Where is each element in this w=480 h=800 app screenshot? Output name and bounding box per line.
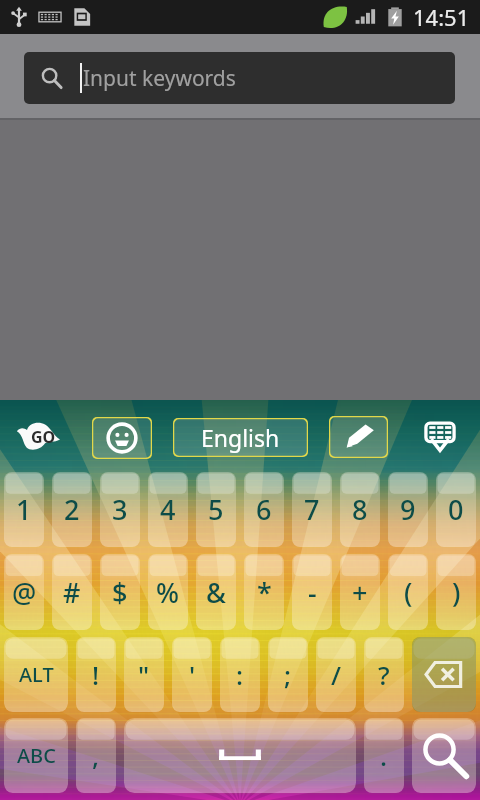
button[interactable]: ? [364,637,404,712]
staticText: : [236,657,244,692]
button[interactable]: + [340,554,380,630]
staticText: ; [284,657,292,692]
button[interactable]: 6 [244,472,284,547]
staticText: + [352,574,368,611]
staticText: 8 [352,491,368,528]
button[interactable]: , [76,718,116,793]
button[interactable]: ! [76,637,116,712]
button[interactable]: GO Keyboard menu [16,421,60,451]
staticText: ABC [17,742,56,769]
button[interactable]: : [220,637,260,712]
staticText: 3 [112,491,128,528]
button[interactable]: 9 [388,472,428,547]
button[interactable]: - [292,554,332,630]
button[interactable]: ( [388,554,428,630]
staticText: @ [12,574,37,611]
staticText: 2 [64,491,80,528]
button[interactable]: 0 [436,472,476,547]
button[interactable]: @ [4,554,44,630]
staticText: ? [378,657,390,692]
button[interactable]: $ [100,554,140,630]
staticText: 1 [16,491,32,528]
button[interactable]: . [364,718,404,793]
button[interactable]: Search [412,718,476,793]
staticText: 4 [160,491,176,528]
button[interactable]: % [148,554,188,630]
button[interactable]: 8 [340,472,380,547]
staticText: $ [112,574,128,611]
staticText: ' [189,657,196,692]
button[interactable]: * [244,554,284,630]
staticText: Input keywords [83,64,236,93]
button[interactable]: English [173,418,308,457]
button[interactable]: Space [124,718,356,793]
button[interactable]: 5 [196,472,236,547]
staticText: & [206,574,226,611]
button[interactable]: 7 [292,472,332,547]
button[interactable]: # [52,554,92,630]
staticText: ) [452,574,461,611]
staticText: ( [404,574,413,611]
staticText: " [138,657,150,692]
button[interactable]: ' [172,637,212,712]
button[interactable]: Backspace [412,637,476,712]
staticText: * [257,574,272,611]
button[interactable]: " [124,637,164,712]
staticText: 0 [448,491,464,528]
staticText: # [63,574,81,611]
button[interactable]: ALT [4,637,68,712]
staticText: GO [31,426,56,448]
button[interactable]: ABC [4,718,68,793]
button[interactable]: Handwriting [329,416,388,458]
staticText: 14:51 [413,2,470,32]
staticText: - [308,574,317,611]
button[interactable]: 1 [4,472,44,547]
button[interactable]: Emoji [92,417,152,459]
button[interactable]: ; [268,637,308,712]
staticText: % [156,574,180,611]
button[interactable]: Hide keyboard [418,416,462,456]
staticText: . [380,738,388,773]
button[interactable]: 4 [148,472,188,547]
button[interactable]: / [316,637,356,712]
staticText: ! [92,657,100,692]
button[interactable]: 3 [100,472,140,547]
button[interactable]: Input keywords [24,52,455,104]
staticText: 9 [400,491,416,528]
button[interactable]: & [196,554,236,630]
staticText: / [331,657,342,692]
staticText: ALT [19,661,54,688]
staticText: 7 [304,491,320,528]
staticText: English [201,422,280,453]
button[interactable]: 2 [52,472,92,547]
button[interactable]: ) [436,554,476,630]
staticText: 5 [208,491,224,528]
staticText: 6 [256,491,272,528]
staticText: , [92,738,100,773]
